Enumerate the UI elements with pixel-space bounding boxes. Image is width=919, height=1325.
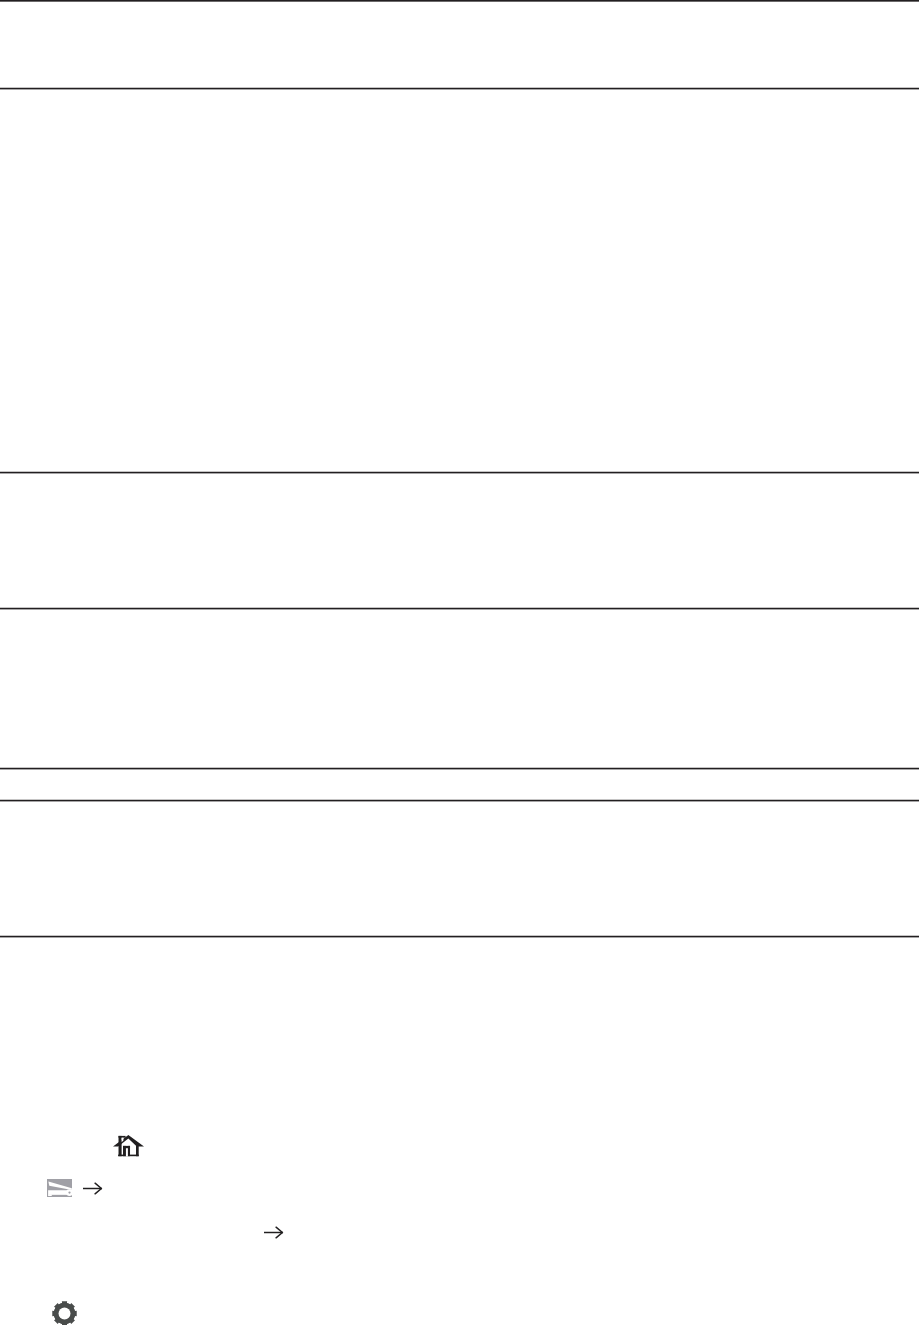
button[interactable]: Section 1 [0,88,919,472]
button[interactable]: Home [113,1135,144,1157]
button[interactable]: Go to scanner [83,1183,102,1194]
button[interactable]: Footer [0,936,919,1325]
button[interactable]: Continue [264,1227,283,1238]
button[interactable]: Section 5 [0,800,919,936]
button[interactable]: Header [0,0,919,88]
button[interactable]: Scan document [47,1179,72,1197]
button[interactable]: Section 2 [0,472,919,608]
button[interactable]: Section 3 [0,608,919,768]
button[interactable]: Section 4 [0,768,919,800]
button[interactable]: Settings [52,1301,77,1325]
